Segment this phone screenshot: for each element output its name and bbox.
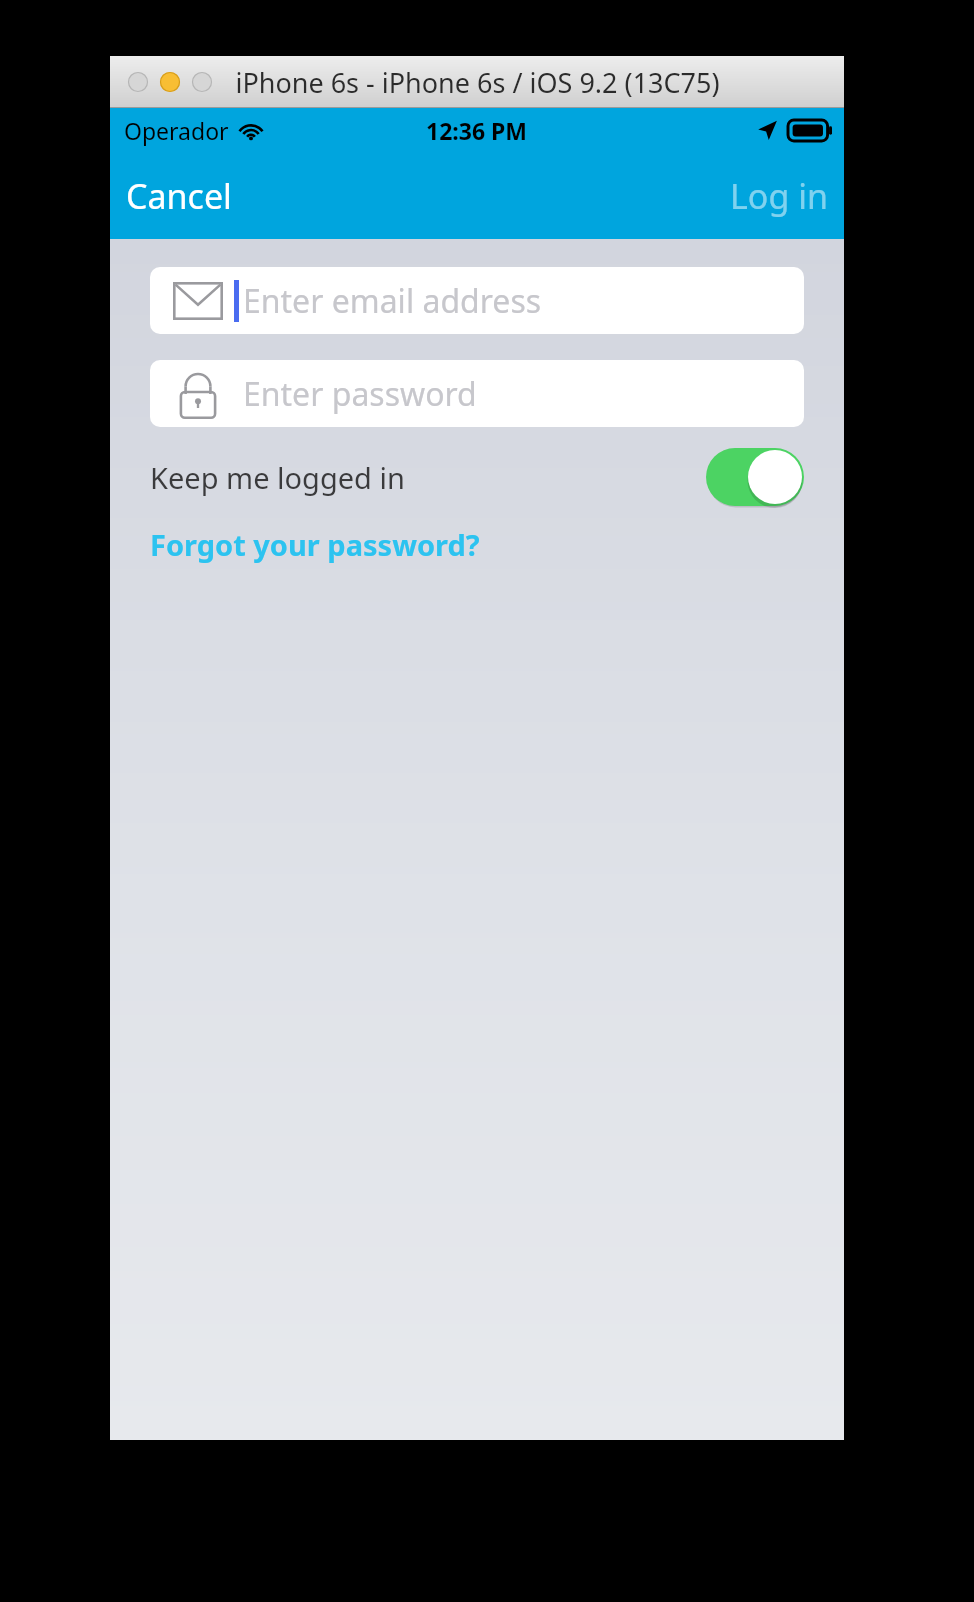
button[interactable]: Cancel <box>110 163 248 229</box>
staticText: Keep me logged in <box>150 458 405 497</box>
button[interactable]: Keep me logged in toggle, on <box>706 448 804 506</box>
staticText: Forgot your password? <box>150 525 480 564</box>
button[interactable]: Email address field <box>150 267 804 334</box>
staticText: Log in <box>730 173 828 219</box>
staticText: Operador <box>124 115 229 146</box>
staticText: iPhone 6s - iPhone 6s / iOS 9.2 (13C75) <box>235 64 720 101</box>
button[interactable]: Keep me logged in <box>150 441 804 513</box>
staticText: 12:36 PM <box>426 115 528 146</box>
staticText: Enter password <box>243 372 477 416</box>
button[interactable]: Log in <box>714 163 844 229</box>
button[interactable]: Password field <box>150 360 804 427</box>
staticText: Enter email address <box>243 279 542 323</box>
staticText: Cancel <box>126 173 232 219</box>
button[interactable]: Forgot your password? <box>150 519 480 570</box>
